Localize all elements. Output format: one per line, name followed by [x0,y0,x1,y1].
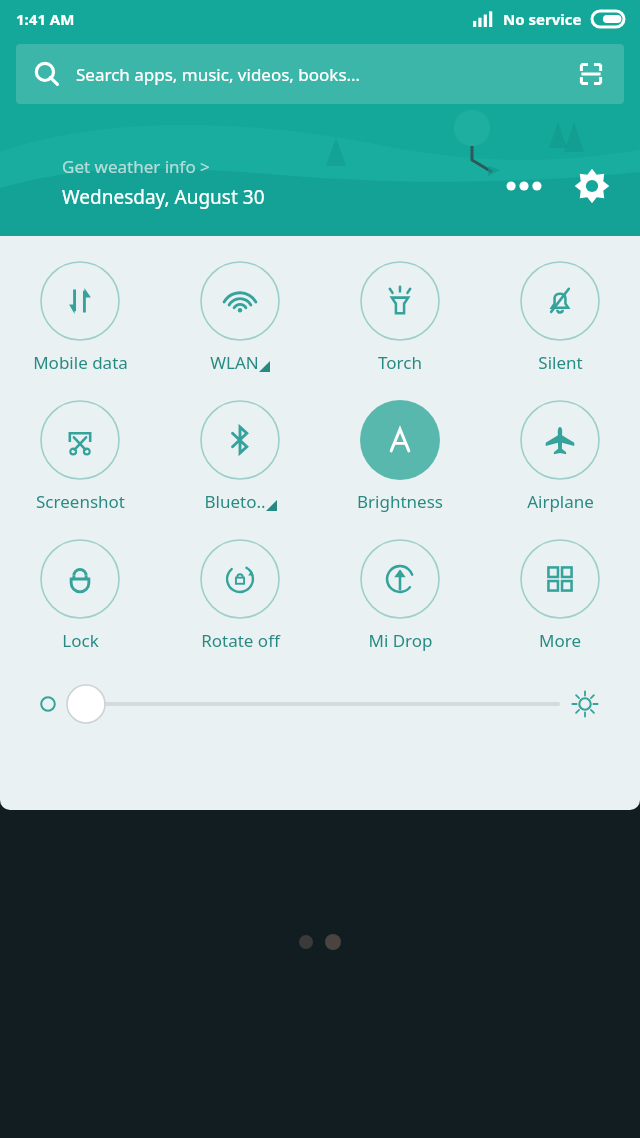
button[interactable]: WLAN [160,261,320,374]
button[interactable]: Blueto.. [160,400,320,513]
button[interactable]: Mi Drop [320,539,480,652]
button[interactable]: Scan [576,59,606,89]
button[interactable]: Settings [570,164,614,208]
button[interactable]: Torch [320,261,480,374]
staticText: Get weather info > [62,155,210,178]
button[interactable]: Mobile data [0,261,160,374]
button[interactable]: More options [502,164,546,208]
button[interactable]: Search apps, music, videos, books… [16,44,624,104]
staticText: Wednesday, August 30 [62,184,265,210]
staticText: Airplane [527,490,594,513]
button[interactable]: Silent [480,261,640,374]
button[interactable]: Brightness [320,400,480,513]
button[interactable]: Lock [0,539,160,652]
staticText: Mobile data [33,351,128,374]
staticText: No service [503,9,582,29]
staticText: Silent [538,351,583,374]
button[interactable]: More [480,539,640,652]
button[interactable]: Airplane [480,400,640,513]
button[interactable] [40,676,600,732]
staticText: Screenshot [36,490,125,513]
staticText: Brightness [357,490,443,513]
button[interactable]: Get weather info > [62,155,265,210]
staticText: More [539,629,581,652]
staticText: 1:41 AM [16,9,75,29]
staticText: Lock [62,629,99,652]
staticText: Rotate off [201,629,280,652]
button[interactable]: Screenshot [0,400,160,513]
staticText: Blueto.. [204,490,266,513]
button[interactable]: Rotate off [160,539,320,652]
staticText: Search apps, music, videos, books… [76,63,361,86]
staticText: Mi Drop [368,629,433,652]
staticText: WLAN [210,351,259,374]
staticText: Torch [378,351,422,374]
